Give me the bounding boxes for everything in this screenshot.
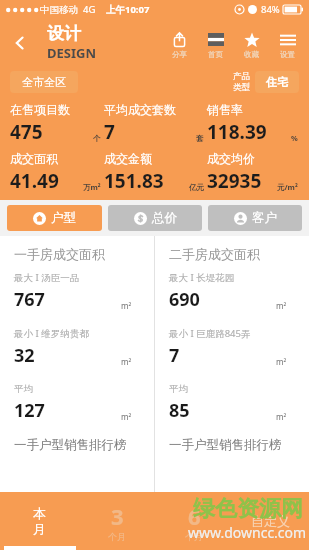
staticText: % xyxy=(291,133,298,143)
staticText: 最大 I 汤臣一品 xyxy=(14,271,80,284)
staticText: 767 xyxy=(14,287,45,312)
button[interactable]: 户型 xyxy=(7,205,102,231)
staticText: 中国移动 xyxy=(40,4,78,16)
staticText: 151.83 xyxy=(104,168,164,194)
staticText: m² xyxy=(276,356,287,367)
button[interactable]: 客户 xyxy=(208,205,302,231)
staticText: 最小 I 巨鹿路845弄 xyxy=(169,327,251,340)
staticText: 一手户型销售排行榜 xyxy=(14,437,127,453)
staticText: 住宅 xyxy=(266,75,288,89)
staticText: 收藏 xyxy=(244,50,259,59)
staticText: 类型 xyxy=(233,82,250,93)
staticText: 总价 xyxy=(152,210,177,226)
staticText: 绿色资源网 xyxy=(193,495,303,523)
staticText: m² xyxy=(276,411,287,422)
button[interactable]: 产品 xyxy=(233,71,299,93)
staticText: 本 xyxy=(33,505,46,521)
staticText: 127 xyxy=(14,398,45,423)
staticText: 二手房成交面积 xyxy=(169,246,260,262)
staticText: 7 xyxy=(104,119,115,145)
staticText: 4G xyxy=(83,3,96,16)
staticText: 全市全区 xyxy=(22,75,66,89)
staticText: m² xyxy=(121,411,132,422)
staticText: 7 xyxy=(169,343,180,368)
staticText: 元/m² xyxy=(277,182,298,192)
staticText: 32 xyxy=(14,343,35,368)
staticText: 销售率 xyxy=(207,102,243,117)
staticText: 41.49 xyxy=(10,168,59,194)
button[interactable]: 设置 xyxy=(269,29,305,61)
staticText: 最大 I 长堤花园 xyxy=(169,271,235,284)
staticText: m² xyxy=(276,300,287,311)
button[interactable]: 6 xyxy=(155,492,232,550)
staticText: 首页 xyxy=(208,50,223,59)
staticText: 设计 xyxy=(47,23,81,44)
staticText: 最小 I 维罗纳贵都 xyxy=(14,327,89,340)
button[interactable]: 全市全区 xyxy=(10,71,78,93)
staticText: 3 xyxy=(111,501,124,531)
staticText: 个月 xyxy=(108,531,126,542)
staticText: 平均 xyxy=(169,383,188,395)
button[interactable]: 本 xyxy=(0,492,78,550)
button[interactable]: 分享 xyxy=(161,29,197,61)
button[interactable]: Back xyxy=(0,19,40,66)
staticText: 万m² xyxy=(83,182,101,192)
button[interactable]: 自定义 xyxy=(232,492,309,550)
staticText: 一手户型销售排行榜 xyxy=(169,437,282,453)
staticText: 户型 xyxy=(51,210,76,226)
staticText: 在售项目数 xyxy=(10,102,70,117)
staticText: 一手房成交面积 xyxy=(14,246,105,262)
staticText: m² xyxy=(121,356,132,367)
staticText: 475 xyxy=(10,119,43,145)
button[interactable]: 收藏 xyxy=(233,29,269,61)
button[interactable]: 首页 xyxy=(197,29,233,61)
staticText: 85 xyxy=(169,398,190,423)
staticText: 月 xyxy=(33,521,46,537)
staticText: 6 xyxy=(188,501,201,531)
staticText: 上午10:07 xyxy=(106,3,150,16)
staticText: DESIGN xyxy=(47,44,96,62)
staticText: 客户 xyxy=(252,210,277,226)
staticText: 自定义 xyxy=(251,513,290,529)
staticText: 成交均价 xyxy=(207,151,255,166)
staticText: 亿元 xyxy=(189,183,204,192)
staticText: 成交面积 xyxy=(10,151,58,166)
staticText: 个 xyxy=(93,134,101,143)
staticText: 产品 xyxy=(233,71,250,82)
staticText: 设置 xyxy=(280,50,295,59)
staticText: 84% xyxy=(261,3,280,16)
staticText: 个月 xyxy=(185,531,203,542)
staticText: 成交金额 xyxy=(104,151,152,166)
staticText: 118.39 xyxy=(207,119,267,145)
staticText: 套 xyxy=(196,134,204,143)
button[interactable]: 总价 xyxy=(108,205,202,231)
staticText: 分享 xyxy=(172,50,187,59)
staticText: m² xyxy=(121,300,132,311)
staticText: 690 xyxy=(169,287,200,312)
button[interactable]: 3 xyxy=(78,492,155,550)
staticText: 32935 xyxy=(207,168,262,194)
staticText: www.downcc.com xyxy=(188,523,307,542)
staticText: 平均 xyxy=(14,383,33,395)
staticText: 平均成交套数 xyxy=(104,102,176,117)
